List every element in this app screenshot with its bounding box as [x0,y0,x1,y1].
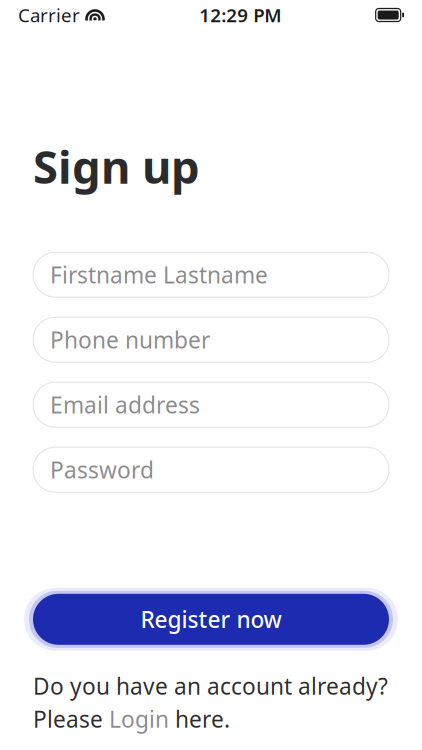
button[interactable]: Password [33,447,389,492]
staticText: Password [50,455,154,485]
staticText: Please [33,704,109,734]
button[interactable]: Email address [33,382,389,427]
button[interactable]: Phone number [33,317,389,362]
staticText: Register now [140,604,281,634]
staticText: Email address [50,390,200,420]
staticText: Phone number [50,325,210,355]
button[interactable]: Firstname Lastname [33,252,389,297]
staticText: Sign up [33,136,200,196]
button[interactable]: Please [33,704,230,734]
staticText: 12:29 PM [199,3,281,27]
staticText: Do you have an account already? [33,671,388,701]
staticText: Login [109,704,169,734]
staticText: Firstname Lastname [50,260,268,290]
button[interactable]: Register now [33,594,389,645]
staticText: Carrier [18,3,80,27]
staticText: here. [169,704,230,734]
